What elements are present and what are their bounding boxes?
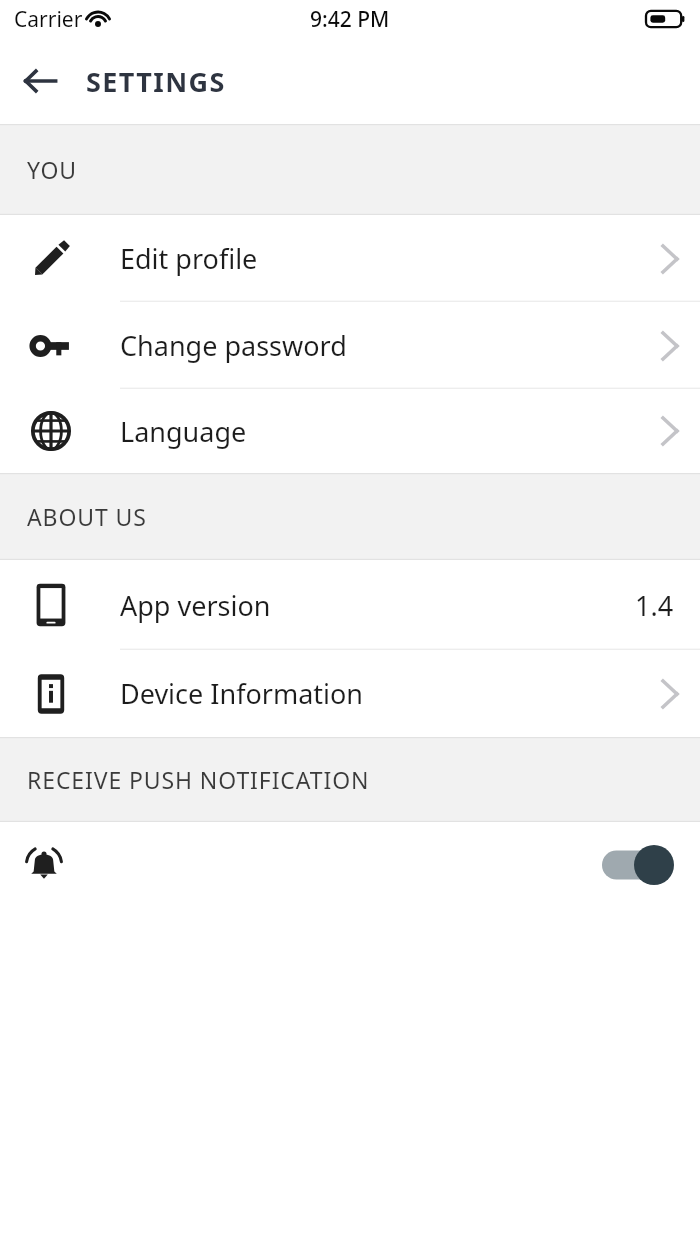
staticText: Change password [120, 327, 347, 364]
staticText: Carrier [14, 5, 83, 34]
button[interactable]: Device Information [0, 650, 700, 737]
staticText: App version [120, 587, 271, 624]
staticText: Language [120, 413, 247, 450]
button[interactable]: Edit profile [0, 215, 700, 302]
button[interactable]: App version [0, 560, 700, 650]
staticText: 9:42 PM [310, 5, 390, 34]
staticText: ABOUT US [27, 501, 147, 532]
staticText: RECEIVE PUSH NOTIFICATION [27, 764, 370, 795]
button[interactable]: Change password [0, 302, 700, 389]
staticText: 1.4 [635, 587, 674, 624]
staticText: YOU [27, 154, 78, 185]
staticText: Edit profile [120, 240, 258, 277]
staticText: SETTINGS [86, 63, 226, 100]
button[interactable]: Receive push notification toggle [0, 822, 700, 908]
button[interactable]: Language [0, 389, 700, 473]
staticText: Device Information [120, 675, 364, 712]
button[interactable]: Back [12, 53, 68, 109]
